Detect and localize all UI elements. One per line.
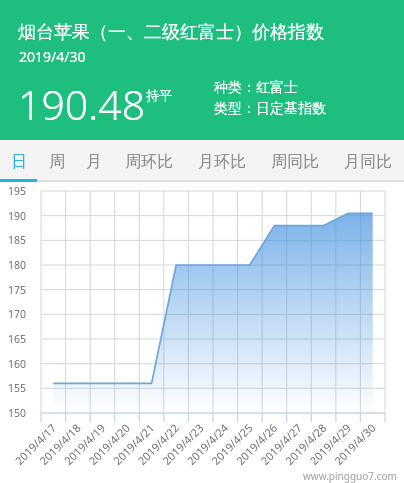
staticText: 种类：红富士 <box>214 79 298 97</box>
staticText: 类型：日定基指数 <box>214 100 326 118</box>
button[interactable]: 日 <box>0 143 38 181</box>
staticText: 月环比 <box>198 152 246 172</box>
staticText: 日 <box>11 152 27 172</box>
button[interactable]: 月 <box>75 143 112 181</box>
staticText: 持平 <box>146 87 172 103</box>
button[interactable]: 月同比 <box>331 143 404 181</box>
staticText: 周 <box>49 152 65 172</box>
staticText: 190.48 <box>18 76 146 132</box>
button[interactable]: 月环比 <box>185 143 258 181</box>
staticText: 周环比 <box>125 152 173 172</box>
staticText: 2019/4/30 <box>19 47 86 66</box>
staticText: 月 <box>86 152 102 172</box>
button[interactable]: 周 <box>38 143 75 181</box>
staticText: 烟台苹果（一、二级红富士）价格指数 <box>18 21 324 44</box>
button[interactable]: 周环比 <box>112 143 185 181</box>
staticText: 月同比 <box>344 152 392 172</box>
staticText: 周同比 <box>271 152 319 172</box>
button[interactable]: 周同比 <box>258 143 331 181</box>
